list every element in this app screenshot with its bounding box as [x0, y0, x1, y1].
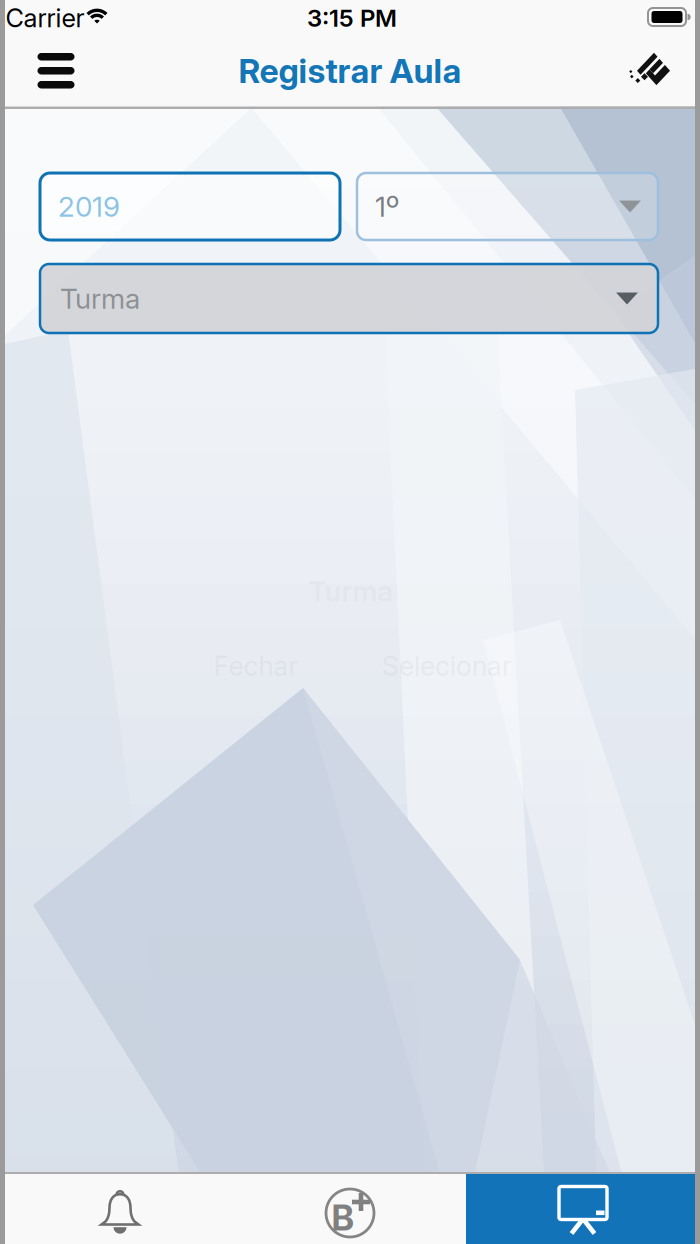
staticText: Turma [60, 282, 140, 315]
button[interactable]: Série [357, 173, 658, 240]
staticText: Fechar [213, 650, 298, 682]
button[interactable]: Menu [26, 43, 86, 99]
button[interactable]: Turma [40, 264, 658, 333]
staticText: 3:15 PM [307, 3, 397, 32]
button[interactable]: Registrar Aula [466, 1174, 700, 1244]
button[interactable]: Ano [40, 173, 340, 240]
staticText: Registrar Aula [238, 51, 461, 91]
staticText: 1º [375, 190, 399, 223]
staticText: Carrier [5, 3, 84, 33]
staticText: B [331, 1197, 354, 1239]
button[interactable]: Logo [616, 43, 676, 99]
button[interactable]: Notificações [0, 1174, 233, 1244]
staticText: 2019 [58, 190, 120, 223]
button[interactable]: Boletim [233, 1174, 466, 1244]
staticText: Selecionar [382, 650, 512, 682]
